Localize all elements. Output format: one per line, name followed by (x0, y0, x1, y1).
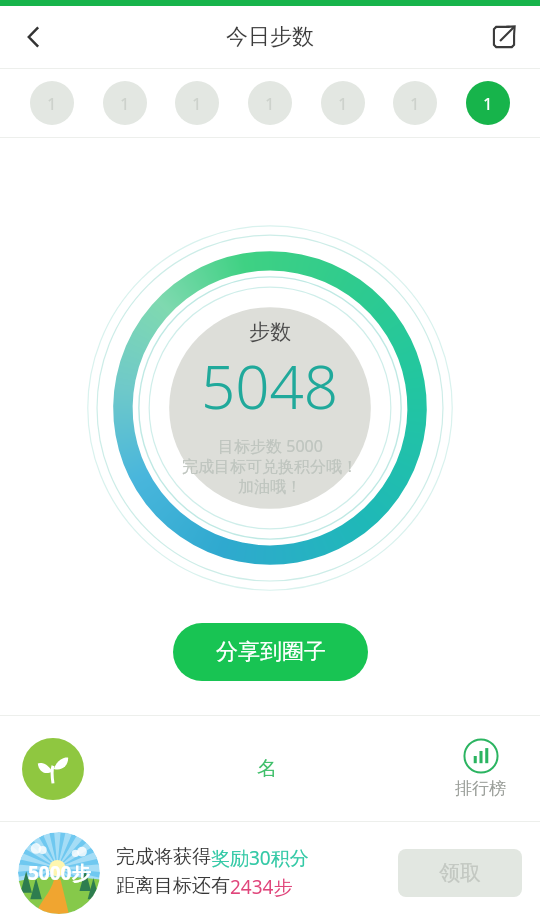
button[interactable]: 名 (249, 748, 285, 789)
button[interactable]: 排行榜 (449, 734, 512, 803)
staticText: 1 (483, 92, 493, 115)
button[interactable]: Share (478, 11, 530, 63)
staticText: 5000步 (28, 860, 91, 886)
button[interactable]: 1 (175, 81, 219, 125)
staticText: 完成将获得 (116, 845, 211, 869)
staticText: 步数 (249, 319, 291, 345)
staticText: 分享到圈子 (216, 638, 326, 666)
button[interactable]: 领取 (398, 849, 522, 897)
staticText: 1 (120, 92, 130, 115)
button[interactable]: 1 (30, 81, 74, 125)
button[interactable]: Sprout (22, 738, 84, 800)
staticText: 完成目标可兑换积分哦！ (182, 457, 358, 477)
staticText: 1 (410, 92, 420, 115)
button[interactable]: 1 (393, 81, 437, 125)
button[interactable]: 1 (466, 81, 510, 125)
button[interactable]: Back (8, 11, 60, 63)
button[interactable]: 1 (321, 81, 365, 125)
staticText: 1 (47, 92, 57, 115)
staticText: 距离目标还有 (116, 874, 230, 898)
staticText: 加油哦！ (238, 477, 302, 497)
staticText: 名 (257, 756, 277, 781)
button[interactable]: 5000 steps badge (18, 832, 100, 914)
staticText: 领取 (439, 860, 481, 886)
staticText: 奖励30积分 (211, 845, 309, 871)
staticText: 目标步数 5000 (218, 435, 323, 457)
staticText: 1 (338, 92, 348, 115)
button[interactable]: 分享到圈子 (173, 623, 368, 681)
button[interactable]: 1 (248, 81, 292, 125)
button[interactable]: 1 (103, 81, 147, 125)
staticText: 5048 (201, 345, 339, 427)
staticText: 2434步 (230, 874, 293, 900)
staticText: 1 (265, 92, 275, 115)
staticText: 排行榜 (455, 778, 506, 799)
staticText: 今日步数 (226, 23, 314, 51)
staticText: 1 (192, 92, 202, 115)
